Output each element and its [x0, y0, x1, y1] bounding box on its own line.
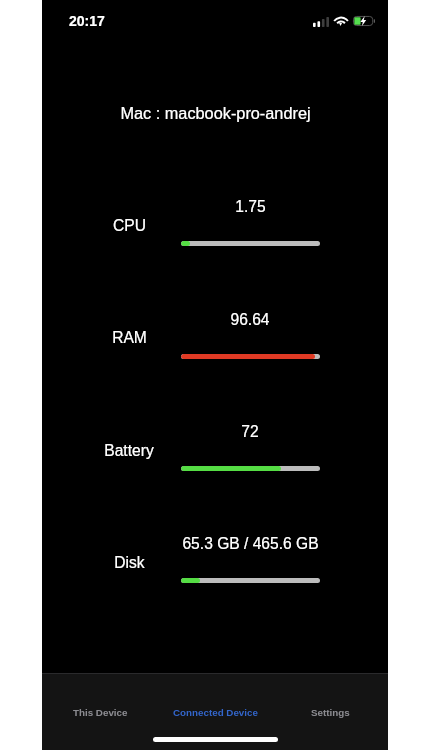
other: Battery charging — [353, 16, 375, 26]
other: Wi-Fi — [334, 16, 348, 26]
staticText: Disk — [114, 554, 145, 571]
staticText: Battery — [104, 442, 154, 459]
staticText: 65.3 GB / 465.6 GB — [182, 535, 319, 552]
staticText: This Device — [73, 707, 128, 718]
staticText: 1.75 — [235, 198, 266, 215]
staticText: 96.64 — [230, 311, 270, 328]
staticText: Settings — [311, 707, 350, 718]
staticText: CPU — [113, 217, 146, 234]
button[interactable]: This Device — [42, 699, 158, 725]
button[interactable]: Connected Device — [158, 699, 273, 725]
staticText: 72 — [241, 423, 259, 440]
staticText: Mac : macbook-pro-andrej — [120, 104, 311, 122]
staticText: Connected Device — [173, 707, 258, 718]
staticText: 20:17 — [69, 13, 105, 29]
other: Cellular signal — [313, 17, 329, 27]
staticText: RAM — [112, 329, 147, 346]
button[interactable]: Settings — [273, 699, 388, 725]
